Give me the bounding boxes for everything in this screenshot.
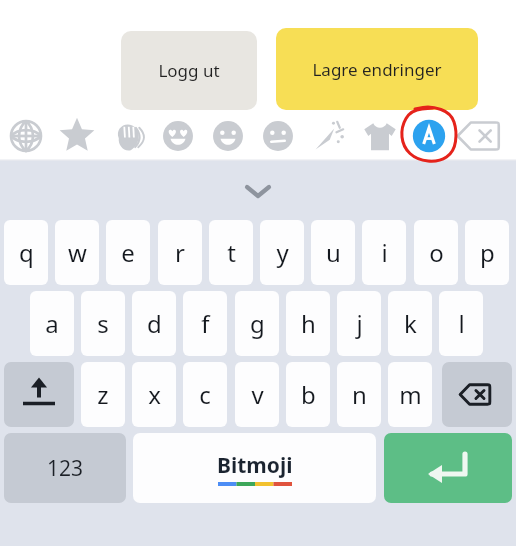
button[interactable]: Favorites	[55, 114, 99, 158]
button[interactable]: Globe	[4, 114, 48, 158]
button[interactable]: w	[55, 220, 99, 285]
button[interactable]: h	[286, 291, 330, 356]
staticText: h	[301, 307, 316, 340]
staticText: j	[356, 307, 363, 340]
staticText: g	[250, 307, 265, 340]
button[interactable]: x	[132, 362, 176, 427]
staticText: a	[45, 307, 59, 340]
staticText: k	[404, 307, 417, 340]
button[interactable]: a	[30, 291, 74, 356]
button[interactable]: u	[311, 220, 355, 285]
staticText: 123	[47, 454, 84, 483]
button[interactable]: p	[465, 220, 509, 285]
button[interactable]: v	[235, 362, 279, 427]
staticText: d	[147, 307, 162, 340]
button[interactable]: b	[286, 362, 330, 427]
button[interactable]: f	[183, 291, 227, 356]
button[interactable]: z	[81, 362, 125, 427]
button[interactable]: Enter	[384, 433, 512, 503]
button[interactable]: Delete	[459, 114, 503, 158]
button[interactable]: d	[132, 291, 176, 356]
button[interactable]: 123	[4, 433, 126, 503]
staticText: b	[301, 378, 316, 411]
button[interactable]: i	[362, 220, 406, 285]
staticText: z	[97, 378, 109, 411]
staticText: q	[19, 236, 34, 269]
button[interactable]: j	[337, 291, 381, 356]
button[interactable]: g	[235, 291, 279, 356]
button[interactable]: t	[209, 220, 253, 285]
staticText: p	[480, 236, 495, 269]
button[interactable]: Shift	[4, 362, 74, 427]
button[interactable]: q	[4, 220, 48, 285]
button[interactable]: e	[106, 220, 150, 285]
button[interactable]: Bitmoji space key	[133, 433, 376, 503]
staticText: t	[227, 236, 236, 269]
staticText: e	[121, 236, 135, 269]
button[interactable]: n	[337, 362, 381, 427]
button[interactable]: Logg ut	[121, 31, 257, 110]
button[interactable]: Wave sticker	[105, 114, 149, 158]
staticText: u	[326, 236, 341, 269]
staticText: Bitmoji	[217, 451, 293, 480]
button[interactable]: y	[260, 220, 304, 285]
staticText: i	[381, 236, 388, 269]
staticText: f	[201, 307, 210, 340]
staticText: o	[429, 236, 444, 269]
staticText: v	[251, 378, 264, 411]
staticText: n	[352, 378, 367, 411]
button[interactable]: l	[439, 291, 483, 356]
staticText: c	[199, 378, 211, 411]
button[interactable]: Outfit	[358, 114, 402, 158]
button[interactable]: Smile sticker	[206, 114, 250, 158]
button[interactable]: Bitmoji avatar	[407, 114, 451, 158]
button[interactable]: Neutral face sticker	[256, 114, 300, 158]
staticText: s	[97, 307, 109, 340]
staticText: Logg ut	[158, 59, 220, 82]
button[interactable]: r	[158, 220, 202, 285]
staticText: x	[148, 378, 161, 411]
button[interactable]: Hide keyboard	[228, 175, 288, 207]
button[interactable]: s	[81, 291, 125, 356]
staticText: l	[458, 307, 465, 340]
button[interactable]: Heart eyes sticker	[156, 114, 200, 158]
staticText: r	[175, 236, 185, 269]
button[interactable]: Lagre endringer	[276, 28, 478, 110]
staticText: y	[276, 236, 289, 269]
button[interactable]: m	[388, 362, 432, 427]
button[interactable]: c	[183, 362, 227, 427]
button[interactable]: o	[414, 220, 458, 285]
button[interactable]: Backspace	[442, 362, 512, 427]
button[interactable]: Party sticker	[307, 114, 351, 158]
staticText: w	[68, 236, 87, 269]
staticText: Lagre endringer	[312, 58, 442, 81]
button[interactable]: k	[388, 291, 432, 356]
staticText: m	[399, 378, 422, 411]
